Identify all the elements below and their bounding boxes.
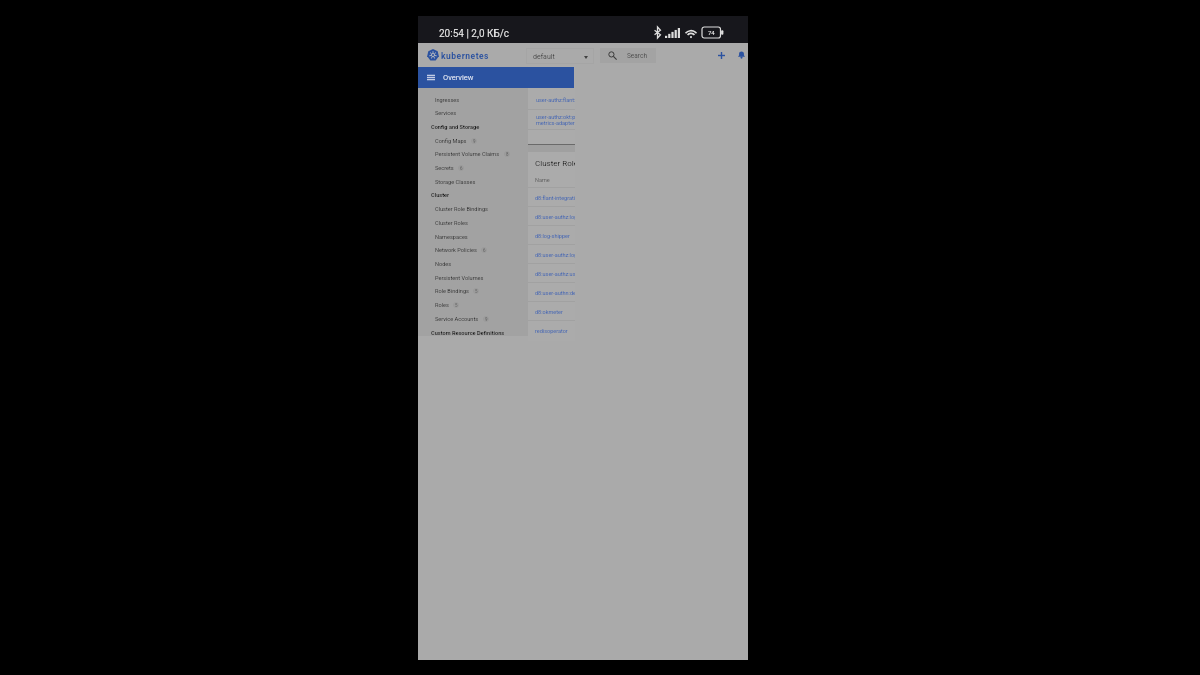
button[interactable]: Namespaces (418, 230, 526, 244)
staticText: Secrets (435, 165, 454, 172)
button[interactable]: Cluster (418, 188, 526, 202)
staticText: Persistent Volumes (435, 275, 484, 282)
staticText: d8:user-authz:log (535, 252, 575, 258)
staticText: 9 (473, 139, 476, 144)
button[interactable]: d8:user-authz:user (528, 264, 575, 283)
staticText: Persistent Volume Claims (435, 151, 500, 158)
staticText: 6 (483, 248, 486, 253)
button[interactable]: d8:okmeter (528, 302, 575, 321)
button[interactable]: user-authz:okt:prometheus (528, 110, 575, 129)
staticText: Name (535, 177, 550, 183)
staticText: Storage Classes (435, 179, 476, 186)
staticText: d8:user-authn:dex (535, 290, 575, 296)
button[interactable]: Services (418, 106, 526, 120)
staticText: user-authz:flant:grafana (536, 97, 575, 103)
staticText: Role Bindings (435, 288, 469, 295)
staticText: Network Policies (435, 247, 477, 254)
staticText: Cluster Roles (535, 159, 575, 168)
button[interactable]: Cluster Role Bindings (418, 202, 526, 216)
staticText: 8 (506, 152, 509, 157)
staticText: Cluster Roles (435, 220, 468, 227)
button[interactable]: user-authz:flant:grafana (528, 90, 575, 109)
button[interactable]: Config Maps (418, 134, 526, 148)
button[interactable]: Notifications (735, 47, 748, 61)
button[interactable]: Cluster Roles (418, 216, 526, 230)
staticText: d8:okmeter (535, 309, 563, 315)
button[interactable]: d8:user-authz:log (528, 207, 575, 226)
staticText: 5 (455, 303, 458, 308)
button[interactable]: Secrets (418, 161, 526, 175)
button[interactable]: default (526, 48, 594, 64)
staticText: Cluster Role Bindings (435, 206, 488, 213)
staticText: d8:log-shipper (535, 233, 570, 239)
staticText: d8:flant-integration (535, 195, 575, 201)
button[interactable]: d8:log-shipper (528, 226, 575, 245)
staticText: Ingresses (435, 97, 460, 104)
button[interactable]: Storage Classes (418, 175, 526, 189)
staticText: metrics-adapter:metrics (536, 120, 575, 126)
button[interactable]: Add (714, 48, 728, 62)
button[interactable]: Network Policies (418, 243, 526, 257)
staticText: Custom Resource Definitions (431, 330, 505, 337)
button[interactable]: Search (600, 48, 656, 63)
staticText: redisoperator (535, 328, 568, 334)
button[interactable]: kubernetes (427, 48, 489, 61)
staticText: Services (435, 110, 457, 117)
staticText: Config and Storage (431, 124, 480, 131)
staticText: d8:user-authz:log (535, 214, 575, 220)
button[interactable]: Ingresses (418, 93, 526, 107)
button[interactable]: Role Bindings (418, 284, 526, 298)
staticText: user-authz:okt:prometheus (536, 114, 575, 120)
staticText: Nodes (435, 261, 452, 268)
button[interactable]: Nodes (418, 257, 526, 271)
button[interactable]: d8:flant-integration (528, 188, 575, 207)
button[interactable]: Overview (418, 67, 574, 88)
staticText: 20:54 | 2,0 КБ/с (439, 28, 510, 40)
button[interactable]: Roles (418, 298, 526, 312)
staticText: 74 (708, 29, 715, 36)
staticText: default (533, 53, 555, 61)
button[interactable]: d8:user-authz:log (528, 245, 575, 264)
staticText: Config Maps (435, 138, 467, 145)
button[interactable]: Service Accounts (418, 312, 526, 326)
staticText: 9 (485, 317, 488, 322)
staticText: d8:user-authz:user (535, 271, 575, 277)
staticText: Roles (435, 302, 449, 309)
button[interactable]: Custom Resource Definitions (418, 326, 526, 340)
button[interactable]: Persistent Volumes (418, 271, 526, 285)
staticText: 6 (460, 166, 463, 171)
staticText: kubernetes (441, 51, 489, 61)
staticText: Overview (443, 73, 474, 82)
staticText: Search (627, 52, 647, 60)
button[interactable]: Config and Storage (418, 120, 526, 134)
staticText: Cluster (431, 192, 450, 199)
button[interactable]: Persistent Volume Claims (418, 147, 526, 161)
button[interactable]: redisoperator (528, 321, 575, 340)
staticText: Namespaces (435, 234, 468, 241)
button[interactable]: d8:user-authn:dex (528, 283, 575, 302)
staticText: 5 (475, 289, 478, 294)
staticText: Service Accounts (435, 316, 479, 323)
